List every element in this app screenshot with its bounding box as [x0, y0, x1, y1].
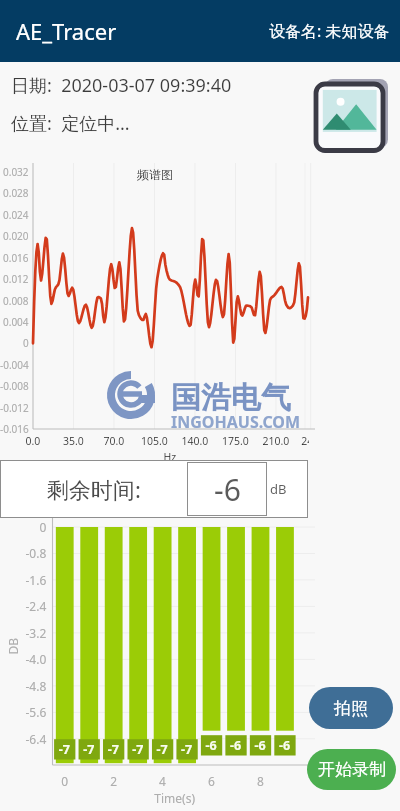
- button[interactable]: 拍照: [309, 687, 393, 729]
- button[interactable]: 开始录制: [307, 749, 396, 790]
- staticText: 开始录制: [318, 759, 386, 780]
- staticText: 日期: 2020-03-07 09:39:40: [11, 73, 232, 98]
- button[interactable]: Photo: [309, 74, 393, 154]
- staticText: 设备名: 未知设备: [269, 20, 390, 42]
- staticText: 剩余时间:: [47, 474, 141, 504]
- staticText: -6: [214, 469, 241, 510]
- staticText: 拍照: [334, 698, 368, 719]
- staticText: dB: [270, 480, 287, 498]
- staticText: AE_Tracer: [16, 16, 117, 46]
- staticText: 位置: 定位中...: [11, 111, 130, 136]
